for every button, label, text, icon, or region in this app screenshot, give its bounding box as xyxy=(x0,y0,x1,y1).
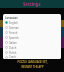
button[interactable]: Polish xyxy=(5,50,61,55)
staticText: English xyxy=(9,21,18,25)
staticText: German xyxy=(9,26,19,30)
button[interactable]: Spanish xyxy=(5,35,61,40)
button[interactable]: Czech xyxy=(5,55,61,59)
button[interactable]: French xyxy=(5,30,61,35)
button[interactable]: Italian xyxy=(5,40,61,45)
staticText: French xyxy=(9,31,18,35)
staticText: Italian xyxy=(9,41,17,45)
button[interactable]: Dutch xyxy=(5,45,61,50)
staticText: Settings xyxy=(23,1,41,7)
staticText: Polish xyxy=(9,51,17,55)
button[interactable]: Settings xyxy=(0,0,64,8)
staticText: PUZZLE LANGUAGE SET, RESTART THE APP xyxy=(17,60,48,68)
staticText: Czech xyxy=(9,55,17,59)
staticText: Language xyxy=(5,16,18,19)
button[interactable]: German xyxy=(5,25,61,30)
button[interactable]: English xyxy=(5,20,61,25)
staticText: Spanish xyxy=(9,36,19,40)
staticText: Dutch xyxy=(9,46,17,50)
